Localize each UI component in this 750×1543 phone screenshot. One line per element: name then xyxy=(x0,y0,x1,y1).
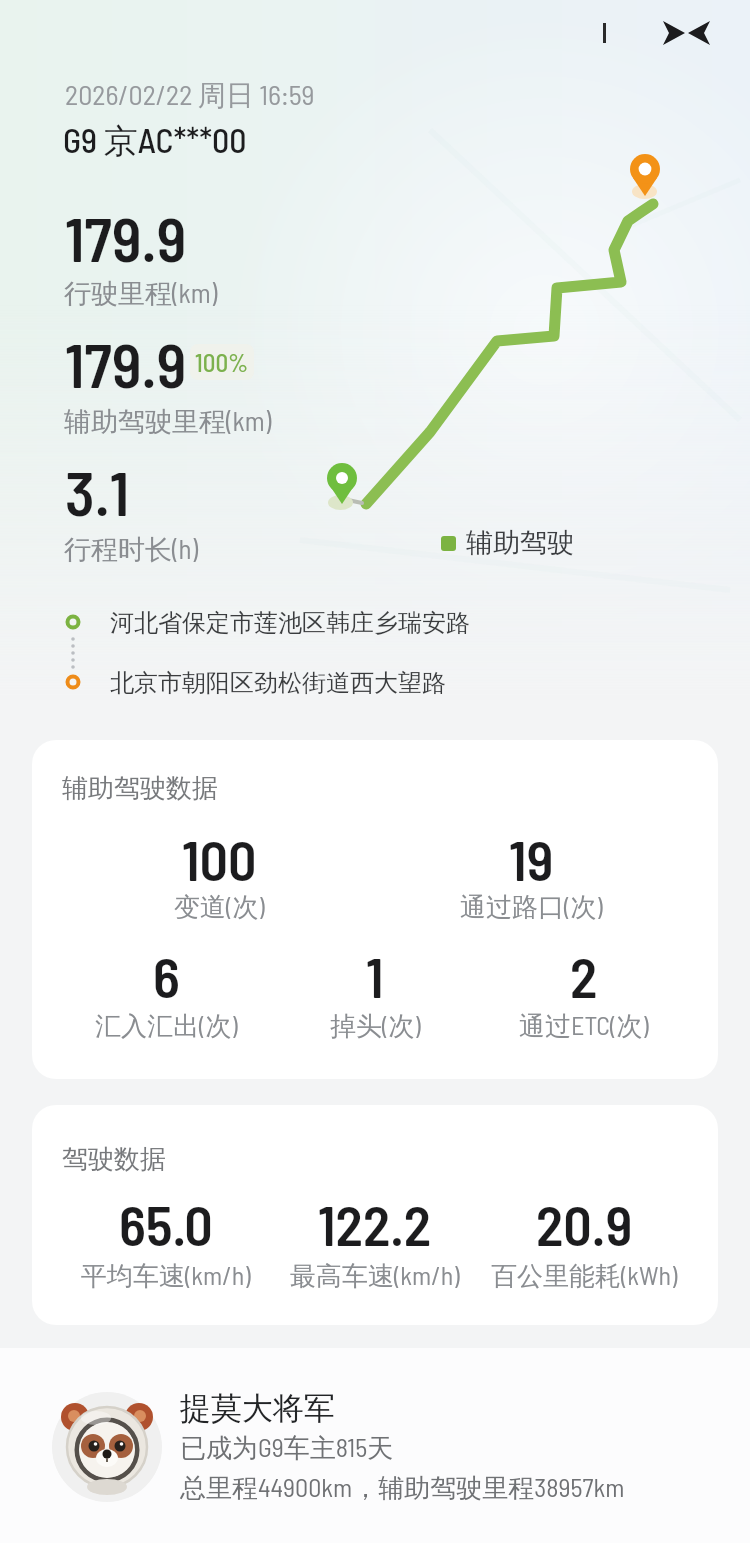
button[interactable] xyxy=(32,740,718,1079)
staticText: 100% xyxy=(195,347,249,377)
staticText: 2 xyxy=(570,942,598,1009)
staticText: 179.9 xyxy=(65,326,187,400)
staticText: 北京市朝阳区劲松街道西大望路 xyxy=(110,668,446,698)
staticText: 行程时长(h) xyxy=(64,532,199,567)
staticText: 6 xyxy=(153,942,180,1009)
staticText: 3.1 xyxy=(65,454,130,528)
button[interactable] xyxy=(659,17,715,51)
staticText: 平均车速(km/h) xyxy=(81,1259,251,1293)
button[interactable] xyxy=(32,1105,718,1325)
staticText: 变道(次) xyxy=(174,890,265,924)
staticText: 179.9 xyxy=(65,200,187,274)
staticText: 100 xyxy=(182,825,257,892)
staticText: 122.2 xyxy=(318,1190,432,1257)
staticText: 河北省保定市莲池区韩庄乡瑞安路 xyxy=(110,608,470,638)
staticText: 行驶里程(km) xyxy=(64,276,218,311)
staticText: 19 xyxy=(509,825,554,892)
staticText: 辅助驾驶数据 xyxy=(62,772,218,805)
staticText: 65.0 xyxy=(119,1190,213,1257)
staticText: 掉头(次) xyxy=(330,1009,421,1043)
staticText: 汇入汇出(次) xyxy=(95,1009,238,1043)
staticText: 已成为G9车主815天 xyxy=(180,1431,394,1465)
staticText: 通过路口(次) xyxy=(460,890,603,924)
staticText: 1 xyxy=(366,942,384,1009)
staticText: 总里程44900km，辅助驾驶里程38957km xyxy=(180,1471,625,1505)
staticText: 百公里能耗(kWh) xyxy=(491,1259,678,1293)
staticText: 20.9 xyxy=(536,1190,633,1257)
staticText: 提莫大将军 xyxy=(180,1389,335,1428)
staticText: 通过ETC(次) xyxy=(519,1009,649,1043)
staticText: 驾驶数据 xyxy=(62,1143,166,1176)
button[interactable] xyxy=(40,600,700,644)
staticText: 辅助驾驶里程(km) xyxy=(64,404,272,439)
staticText: 辅助驾驶 xyxy=(466,526,574,560)
staticText: 2026/02/22 周日 16:59 xyxy=(65,77,315,113)
staticText: G9 京AC***00 xyxy=(63,119,247,163)
button[interactable] xyxy=(40,1380,710,1530)
staticText: 最高车速(km/h) xyxy=(290,1259,460,1293)
